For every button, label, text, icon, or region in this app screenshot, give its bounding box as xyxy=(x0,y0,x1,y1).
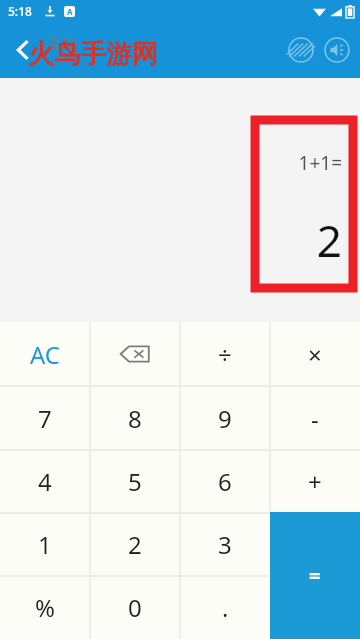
staticText: 火鸟手游网 xyxy=(28,38,158,71)
staticText: 1 xyxy=(38,528,52,561)
button[interactable]: 4 xyxy=(0,450,90,513)
button[interactable]: 8 xyxy=(90,386,180,450)
staticText: + xyxy=(308,465,322,498)
button[interactable]: 2 xyxy=(90,513,180,576)
button[interactable]: 5 xyxy=(90,450,180,513)
button[interactable]: ÷ xyxy=(180,322,270,386)
staticText: AC xyxy=(30,338,61,371)
button[interactable]: + xyxy=(270,450,360,513)
button[interactable]: AC xyxy=(0,322,90,386)
button[interactable]: Backspace xyxy=(90,322,180,386)
button[interactable]: 6 xyxy=(180,450,270,513)
staticText: 8 xyxy=(128,402,142,435)
staticText: . xyxy=(222,591,229,624)
staticText: 6 xyxy=(218,465,232,498)
staticText: 2 xyxy=(128,528,142,561)
button[interactable]: 7 xyxy=(0,386,90,450)
staticText: = xyxy=(309,562,321,589)
button[interactable]: 1 xyxy=(0,513,90,576)
button[interactable]: × xyxy=(270,322,360,386)
staticText: ÷ xyxy=(218,338,232,371)
staticText: 基础 xyxy=(48,35,76,53)
button[interactable]: % xyxy=(0,576,90,639)
staticText: 7 xyxy=(38,402,52,435)
button[interactable]: Sound xyxy=(322,35,352,65)
button[interactable]: 3 xyxy=(180,513,270,576)
staticText: 5 xyxy=(128,465,142,498)
staticText: A xyxy=(67,6,73,17)
button[interactable]: . xyxy=(180,576,270,639)
button[interactable]: = xyxy=(270,512,360,639)
button[interactable]: - xyxy=(270,386,360,450)
staticText: 9 xyxy=(218,402,232,435)
staticText: 2 xyxy=(316,210,342,270)
button[interactable]: 9 xyxy=(180,386,270,450)
button[interactable]: 0 xyxy=(90,576,180,639)
staticText: 0 xyxy=(128,591,142,624)
staticText: × xyxy=(308,338,322,371)
staticText: 3 xyxy=(218,528,232,561)
staticText: 1+1= xyxy=(298,150,342,176)
staticText: - xyxy=(311,402,319,435)
staticText: 4 xyxy=(38,465,52,498)
button[interactable]: Back xyxy=(0,26,48,74)
button[interactable]: History off xyxy=(286,35,316,65)
staticText: 5:18 xyxy=(8,3,32,19)
staticText: % xyxy=(35,591,55,624)
